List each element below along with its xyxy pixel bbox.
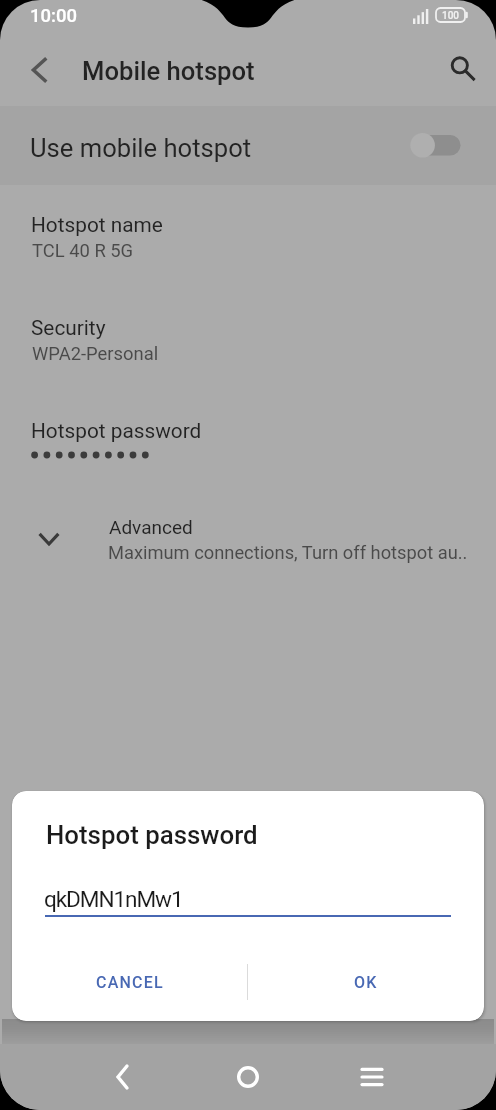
staticText: Mobile hotspot bbox=[82, 56, 255, 86]
button[interactable]: Hotspot name bbox=[0, 203, 496, 283]
button[interactable]: Use mobile hotspot bbox=[404, 128, 466, 162]
staticText: 10:00 bbox=[30, 5, 77, 27]
button[interactable]: Home bbox=[224, 1044, 272, 1110]
button[interactable]: Recent apps bbox=[348, 1044, 396, 1110]
staticText: Maximum connections, Turn off hotspot au… bbox=[108, 542, 468, 563]
staticText: qkDMN1nMw1 bbox=[44, 886, 183, 912]
staticText: Advanced bbox=[109, 516, 193, 538]
staticText: 100 bbox=[442, 10, 460, 22]
staticText: Hotspot password bbox=[31, 419, 202, 443]
button[interactable]: Hotspot password bbox=[0, 409, 496, 477]
button[interactable]: CANCEL bbox=[12, 951, 247, 1013]
staticText: Security bbox=[31, 316, 106, 340]
button[interactable]: Navigate up bbox=[16, 47, 62, 93]
staticText: WPA2-Personal bbox=[32, 343, 159, 365]
staticText: Use mobile hotspot bbox=[30, 133, 252, 163]
button[interactable]: Back bbox=[99, 1044, 147, 1110]
staticText: Hotspot name bbox=[31, 213, 163, 237]
staticText: CANCEL bbox=[96, 973, 164, 992]
button[interactable]: Security bbox=[0, 306, 496, 386]
staticText: OK bbox=[354, 973, 378, 992]
button[interactable]: OK bbox=[248, 951, 484, 1013]
staticText: TCL 40 R 5G bbox=[32, 240, 134, 262]
staticText: Hotspot password bbox=[46, 820, 258, 850]
button[interactable] bbox=[0, 106, 496, 185]
button[interactable]: Advanced bbox=[0, 500, 496, 575]
button[interactable]: Search bbox=[441, 47, 488, 94]
